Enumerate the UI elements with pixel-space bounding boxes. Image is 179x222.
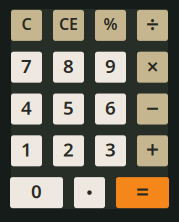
staticText: 7 — [21, 53, 32, 78]
staticText: % — [103, 13, 117, 34]
button[interactable]: % — [95, 10, 126, 41]
button[interactable]: 6 — [95, 93, 126, 124]
button[interactable]: × — [137, 52, 168, 83]
staticText: = — [136, 176, 149, 207]
button[interactable]: + — [137, 135, 168, 166]
staticText: 4 — [21, 95, 32, 120]
staticText: 8 — [63, 53, 74, 78]
button[interactable]: = — [116, 177, 169, 208]
button[interactable]: 7 — [11, 52, 42, 83]
button[interactable]: C — [11, 10, 42, 41]
button[interactable]: − — [137, 93, 168, 124]
staticText: 0 — [31, 179, 42, 203]
button[interactable]: 2 — [53, 135, 84, 166]
staticText: 6 — [105, 95, 116, 120]
button[interactable]: ÷ — [137, 10, 168, 41]
staticText: ÷ — [146, 9, 159, 39]
button[interactable]: 4 — [11, 93, 42, 124]
button[interactable]: 9 — [95, 52, 126, 83]
staticText: CE — [59, 13, 78, 34]
staticText: − — [146, 93, 159, 123]
staticText: 9 — [105, 53, 116, 78]
button[interactable]: 8 — [53, 52, 84, 83]
staticText: + — [146, 135, 159, 165]
staticText: C — [21, 13, 31, 34]
staticText: 3 — [105, 137, 116, 162]
staticText: × — [146, 52, 158, 80]
button[interactable]: Decimal point — [74, 177, 105, 208]
staticText: 1 — [21, 137, 32, 162]
button[interactable]: 5 — [53, 93, 84, 124]
staticText: 2 — [63, 137, 74, 162]
button[interactable]: CE — [53, 10, 84, 41]
button[interactable]: 0 — [10, 177, 63, 208]
button[interactable]: 3 — [95, 135, 126, 166]
button[interactable]: 1 — [11, 135, 42, 166]
staticText: 5 — [63, 95, 74, 120]
